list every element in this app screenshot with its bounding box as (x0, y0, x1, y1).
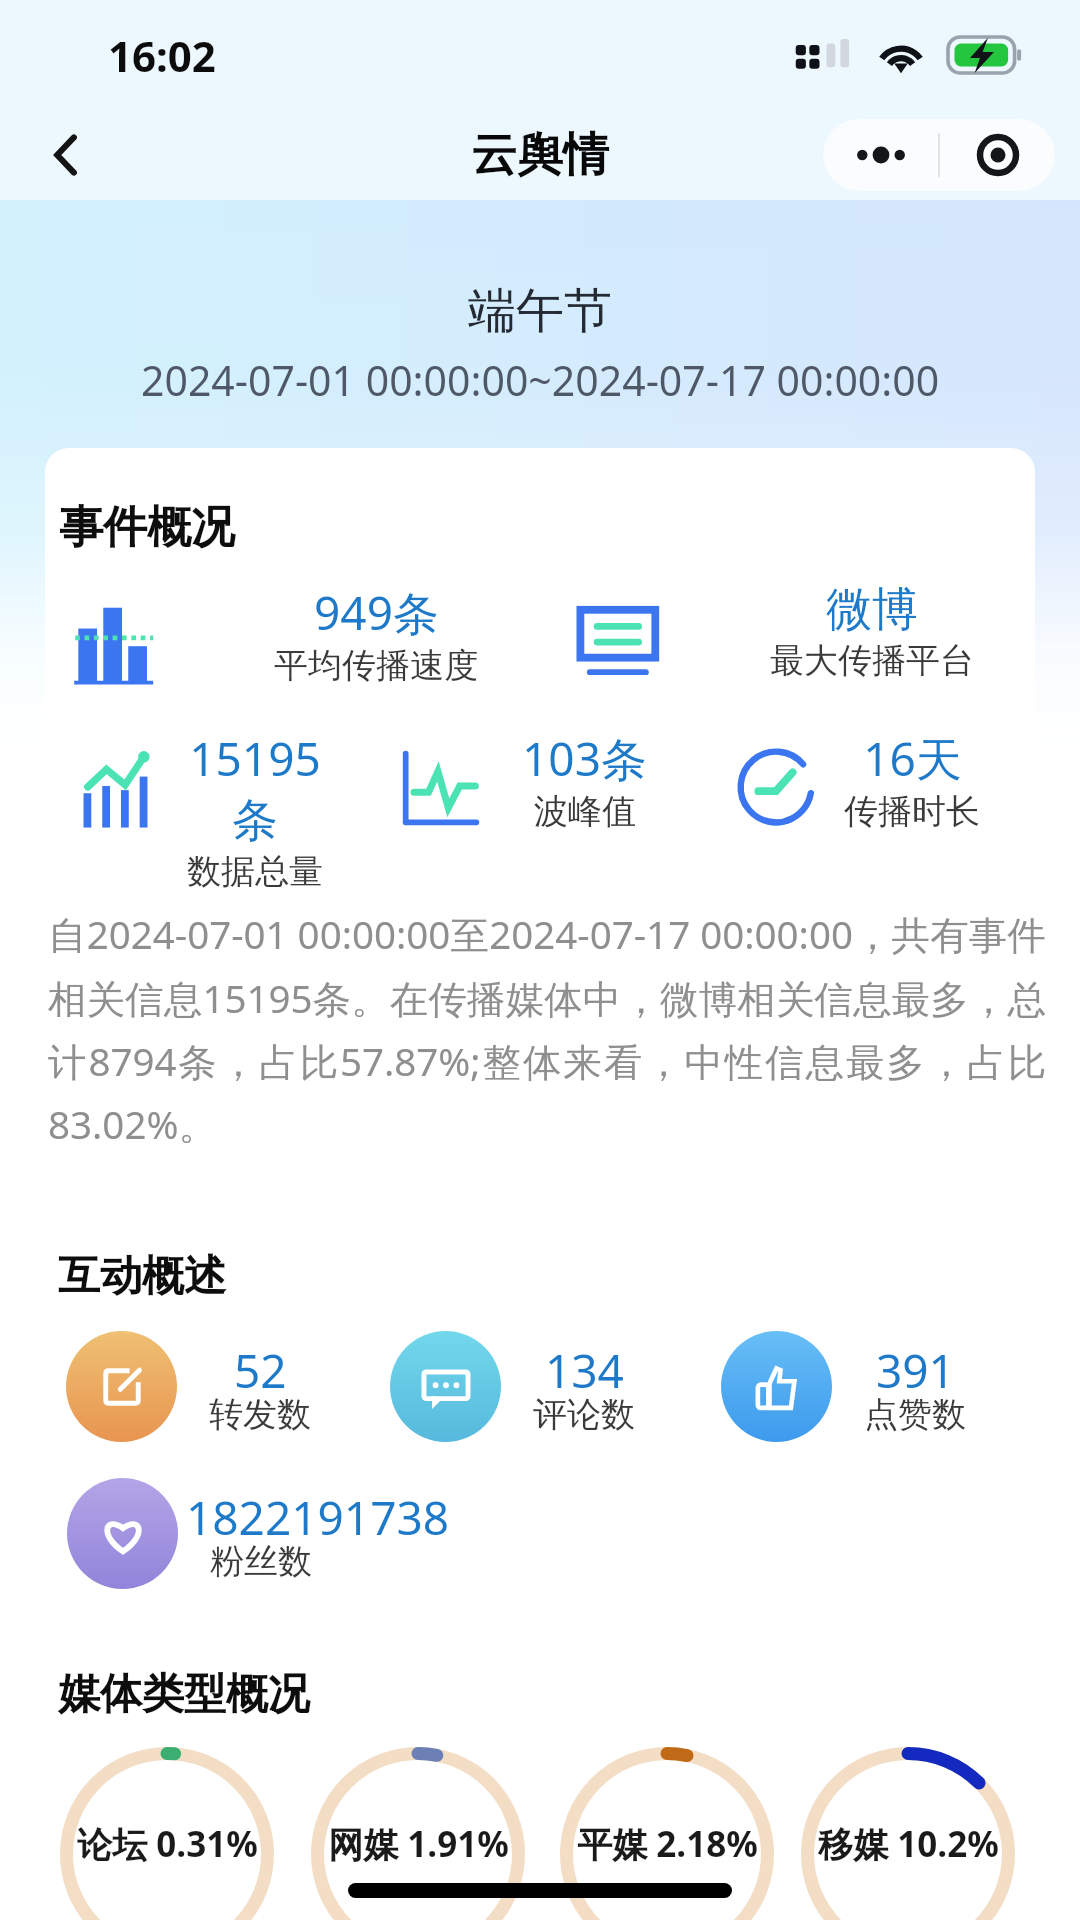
staticText: 15195条 (180, 727, 330, 850)
staticText: 微博 (826, 581, 918, 639)
staticText: 1822191738 (186, 1486, 450, 1549)
staticText: 点赞数 (864, 1393, 966, 1436)
staticText: 16:02 (108, 27, 216, 84)
staticText: 数据总量 (187, 850, 323, 893)
button[interactable]: Close mini program (940, 119, 1055, 191)
staticText: 媒体类型概况 (58, 1668, 310, 1721)
staticText: 自2024-07-01 00:00:00至2024-07-17 00:00:00… (48, 908, 1046, 1150)
button[interactable]: Back (24, 113, 108, 197)
button[interactable]: 1822191738 (67, 1478, 344, 1589)
staticText: 云舆情 (471, 126, 609, 184)
button[interactable]: 论坛 0.31% (60, 1747, 274, 1920)
staticText: 粉丝数 (210, 1540, 312, 1583)
staticText: 2024-07-01 00:00:00~2024-07-17 00:00:00 (141, 352, 940, 408)
staticText: 最大传播平台 (770, 639, 974, 682)
staticText: 端午节 (468, 281, 612, 341)
staticText: 网媒 1.91% (328, 1820, 509, 1868)
staticText: 52 (234, 1339, 287, 1402)
staticText: 评论数 (533, 1393, 635, 1436)
staticText: 134 (545, 1339, 624, 1402)
button[interactable]: More (823, 119, 938, 191)
button[interactable]: 平媒 2.18% (560, 1747, 774, 1920)
staticText: 平媒 2.18% (577, 1820, 758, 1868)
staticText: 平均传播速度 (274, 644, 478, 687)
button[interactable]: 移媒 10.2% (801, 1747, 1015, 1920)
staticText: 传播时长 (844, 790, 980, 833)
button[interactable]: 134 (390, 1331, 667, 1442)
staticText: 论坛 0.31% (77, 1820, 258, 1868)
staticText: 移媒 10.2% (818, 1820, 999, 1868)
staticText: 391 (876, 1339, 955, 1402)
staticText: 波峰值 (534, 790, 636, 833)
staticText: 16天 (863, 727, 962, 790)
staticText: 103条 (522, 727, 647, 790)
staticText: 转发数 (209, 1393, 311, 1436)
staticText: 事件概况 (59, 500, 235, 555)
staticText: 互动概述 (58, 1250, 226, 1303)
button[interactable]: 52 (66, 1331, 343, 1442)
staticText: 949条 (314, 581, 439, 644)
button[interactable]: 391 (721, 1331, 998, 1442)
button[interactable]: 网媒 1.91% (311, 1747, 525, 1920)
